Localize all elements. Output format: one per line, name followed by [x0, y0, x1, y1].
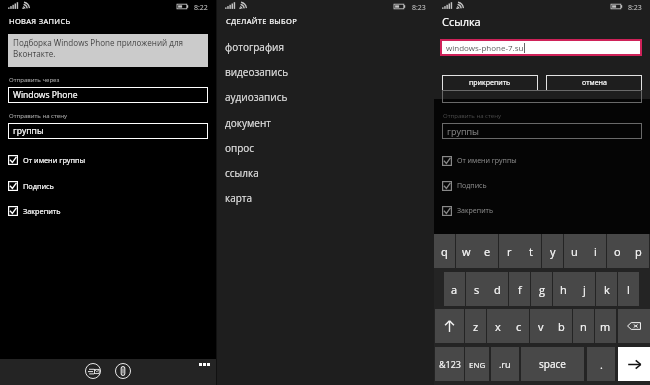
staticText: u [571, 244, 578, 259]
button[interactable]: y [542, 234, 563, 268]
button[interactable]: l [618, 272, 639, 306]
button[interactable]: t [520, 234, 541, 268]
button[interactable]: d [487, 272, 508, 306]
button[interactable]: w [456, 234, 477, 268]
button[interactable]: Подпись [442, 181, 642, 191]
button[interactable]: f [509, 272, 530, 306]
button[interactable]: ENG [465, 347, 489, 381]
staticText: Ссылка [442, 14, 481, 29]
button[interactable]: e [477, 234, 498, 268]
button[interactable]: От имени группы [442, 156, 642, 166]
staticText: b [558, 319, 565, 334]
staticText: a [451, 282, 458, 297]
button[interactable]: k [596, 272, 617, 306]
button[interactable]: Shift [435, 309, 464, 343]
button[interactable]: Подпись [8, 180, 208, 191]
button[interactable]: Подборка Windows Phone приложений для Вк… [8, 34, 208, 67]
button[interactable]: x [487, 309, 508, 343]
staticText: f [518, 282, 522, 297]
staticText: Отправить на стену [9, 112, 67, 120]
button[interactable]: Attach [115, 363, 131, 379]
button[interactable]: &123 [435, 347, 464, 381]
button[interactable]: s [466, 272, 487, 306]
staticText: windows-phone-7.su [446, 42, 524, 53]
button[interactable]: p [628, 234, 649, 268]
staticText: группы [13, 125, 44, 137]
staticText: документ [225, 116, 271, 130]
button[interactable]: a [444, 272, 465, 306]
button[interactable]: прикрепить [442, 75, 538, 91]
staticText: x [495, 319, 501, 334]
staticText: z [473, 319, 479, 334]
staticText: j [583, 282, 586, 297]
button[interactable]: j [574, 272, 595, 306]
button[interactable]: m [595, 309, 616, 343]
staticText: отмена [582, 78, 607, 88]
button[interactable]: r [499, 234, 520, 268]
staticText: Подпись [457, 181, 487, 191]
button[interactable]: More options [199, 363, 210, 366]
button[interactable]: От имени группы [8, 154, 208, 165]
button[interactable]: q [434, 234, 455, 268]
button[interactable]: Backspace [618, 309, 650, 343]
button[interactable]: .ru [491, 347, 519, 381]
staticText: v [538, 319, 544, 334]
staticText: k [604, 282, 610, 297]
button[interactable]: группы [8, 123, 208, 139]
staticText: w [462, 244, 471, 259]
staticText: 8:23 [628, 3, 642, 13]
button[interactable]: Windows Phone [8, 87, 208, 103]
staticText: Закрепить [457, 206, 494, 216]
button[interactable]: . [587, 347, 615, 381]
staticText: m [600, 319, 611, 334]
button[interactable]: документ [217, 112, 434, 134]
button[interactable]: space [521, 347, 584, 381]
button[interactable]: карта [217, 187, 434, 209]
staticText: видеозапись [225, 65, 289, 79]
button[interactable]: i [585, 234, 606, 268]
staticText: группы [447, 125, 479, 137]
staticText: Подпись [23, 181, 54, 191]
button[interactable]: Закрепить [8, 205, 208, 216]
button[interactable]: u [564, 234, 585, 268]
button[interactable]: h [553, 272, 574, 306]
staticText: d [494, 282, 501, 297]
button[interactable]: g [531, 272, 552, 306]
staticText: Закрепить [23, 206, 61, 216]
staticText: q [441, 244, 448, 259]
button[interactable]: v [530, 309, 551, 343]
button[interactable]: Enter [618, 347, 650, 381]
staticText: h [560, 282, 567, 297]
button[interactable]: Закрепить [442, 206, 642, 216]
staticText: карта [225, 191, 253, 205]
button[interactable]: опрос [217, 137, 434, 159]
button[interactable]: отмена [546, 75, 642, 91]
button[interactable]: аудиозапись [217, 86, 434, 108]
button[interactable]: b [551, 309, 572, 343]
staticText: Отправить через [9, 76, 60, 84]
staticText: 8:23 [412, 3, 426, 13]
staticText: . [600, 357, 603, 372]
button[interactable]: z [465, 309, 486, 343]
staticText: s [474, 282, 480, 297]
staticText: &123 [439, 358, 461, 370]
button[interactable]: o [607, 234, 628, 268]
staticText: ENG [469, 359, 486, 370]
button[interactable]: видеозапись [217, 61, 434, 83]
staticText: Windows Phone [13, 89, 78, 101]
staticText: i [594, 244, 597, 259]
button[interactable]: Send post [85, 363, 101, 379]
button[interactable]: n [573, 309, 594, 343]
staticText: СДЕЛАЙТЕ ВЫБОР [226, 16, 298, 26]
staticText: space [539, 357, 566, 371]
button[interactable]: windows-phone-7.su [442, 41, 640, 54]
staticText: НОВАЯ ЗАПИСЬ [9, 16, 71, 26]
staticText: r [507, 244, 512, 259]
button[interactable]: фотография [217, 36, 434, 58]
staticText: c [516, 319, 522, 334]
staticText: Подборка Windows Phone приложений для Вк… [13, 37, 184, 59]
button[interactable]: c [508, 309, 529, 343]
button[interactable]: ссылка [217, 162, 434, 184]
staticText: l [627, 282, 630, 297]
staticText: ссылка [225, 166, 259, 180]
